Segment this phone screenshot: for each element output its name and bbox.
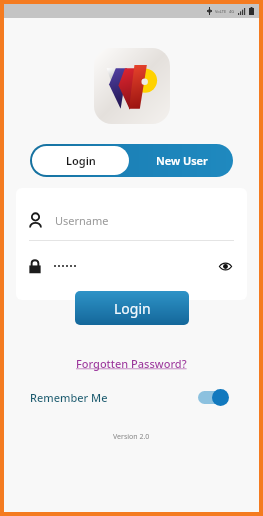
button[interactable]: Login [32, 146, 129, 175]
staticText: Login [114, 299, 151, 318]
staticText: Remember Me [30, 390, 108, 405]
button[interactable]: Forgotten Password? [70, 353, 193, 374]
button[interactable]: Login [75, 291, 189, 325]
button[interactable]: App logo [94, 48, 170, 124]
button[interactable]: Username [29, 210, 234, 230]
button[interactable] [54, 265, 216, 267]
button[interactable]: New User [131, 144, 233, 177]
staticText: Username [55, 213, 109, 228]
button[interactable]: Remember Me toggle [196, 386, 233, 408]
button[interactable]: Show password [216, 257, 234, 275]
staticText: VoLTE [215, 9, 227, 14]
staticText: 4G [229, 9, 235, 14]
staticText: New User [156, 153, 208, 168]
staticText: Version 2.0 [113, 432, 150, 442]
staticText: Login [66, 153, 96, 168]
staticText: Forgotten Password? [76, 356, 187, 371]
